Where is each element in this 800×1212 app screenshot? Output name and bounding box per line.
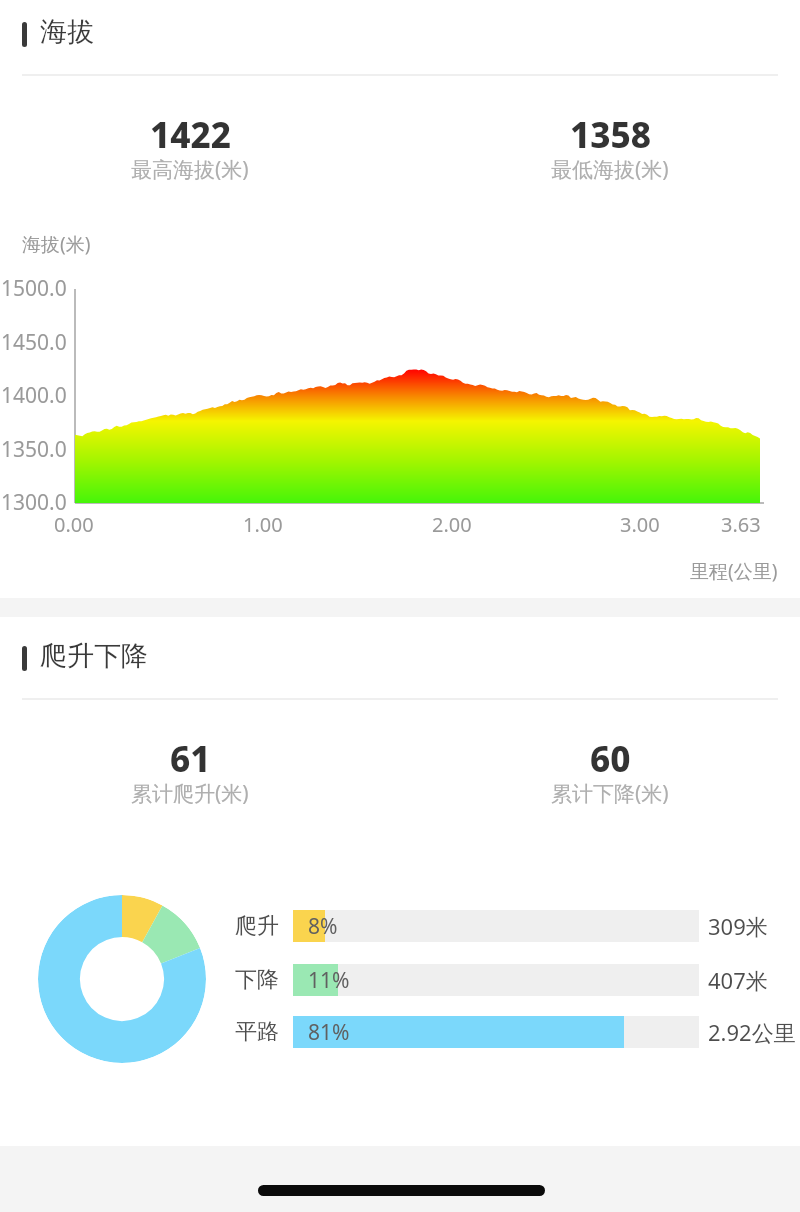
staticText: 1350.0 [1,435,67,464]
button[interactable]: 60 [470,732,750,808]
staticText: 8% [308,912,338,941]
staticText: 0.00 [54,511,94,538]
staticText: 爬升下降 [40,639,148,673]
staticText: 爬升 [235,912,293,940]
button[interactable]: 1358 [470,108,750,184]
staticText: 2.00 [432,511,472,538]
staticText: 2.92公里 [708,1017,796,1047]
staticText: 海拔(米) [22,231,91,257]
staticText: 1.00 [243,511,283,538]
button[interactable]: 爬升 [235,910,800,942]
staticText: 1500.0 [1,274,67,303]
staticText: 3.00 [620,511,660,538]
staticText: 1300.0 [1,488,67,517]
button[interactable]: 海拔 [22,14,94,55]
staticText: 平路 [235,1018,293,1046]
staticText: 累计下降(米) [551,779,669,808]
staticText: 下降 [235,966,293,994]
staticText: 1400.0 [1,381,67,410]
button[interactable]: 坡度分布环形图 [38,895,206,1063]
staticText: 309米 [708,911,768,941]
staticText: 81% [308,1018,350,1047]
button[interactable]: 1422 [50,108,330,184]
staticText: 1450.0 [1,328,67,357]
button[interactable]: 下降 [235,964,800,996]
button[interactable]: 平路 [235,1016,800,1048]
staticText: 1358 [570,111,651,159]
staticText: 最高海拔(米) [131,155,249,184]
staticText: 61 [170,735,211,783]
staticText: 海拔 [40,15,94,49]
staticText: 407米 [708,965,768,995]
staticText: 3.63 [721,511,761,538]
button[interactable]: 海拔剖面图 [75,289,765,504]
staticText: 最低海拔(米) [551,155,669,184]
staticText: 11% [308,966,350,995]
button[interactable]: 61 [50,732,330,808]
button[interactable]: 爬升下降 [22,638,148,679]
staticText: 1422 [150,111,231,159]
staticText: 60 [590,735,631,783]
staticText: 里程(公里) [690,558,778,584]
staticText: 累计爬升(米) [131,779,249,808]
